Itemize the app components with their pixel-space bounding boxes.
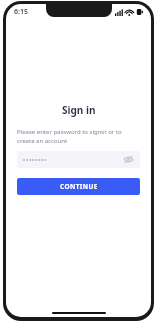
button[interactable]: CONTINUE [17, 178, 140, 195]
button[interactable]: Show password [17, 151, 140, 168]
staticText: Please enter password to signin or to cr… [17, 128, 140, 145]
staticText: Sign in [62, 103, 96, 117]
staticText: CONTINUE [60, 182, 98, 191]
button[interactable]: Show password [123, 154, 134, 165]
staticText: 6:15 [14, 7, 28, 17]
